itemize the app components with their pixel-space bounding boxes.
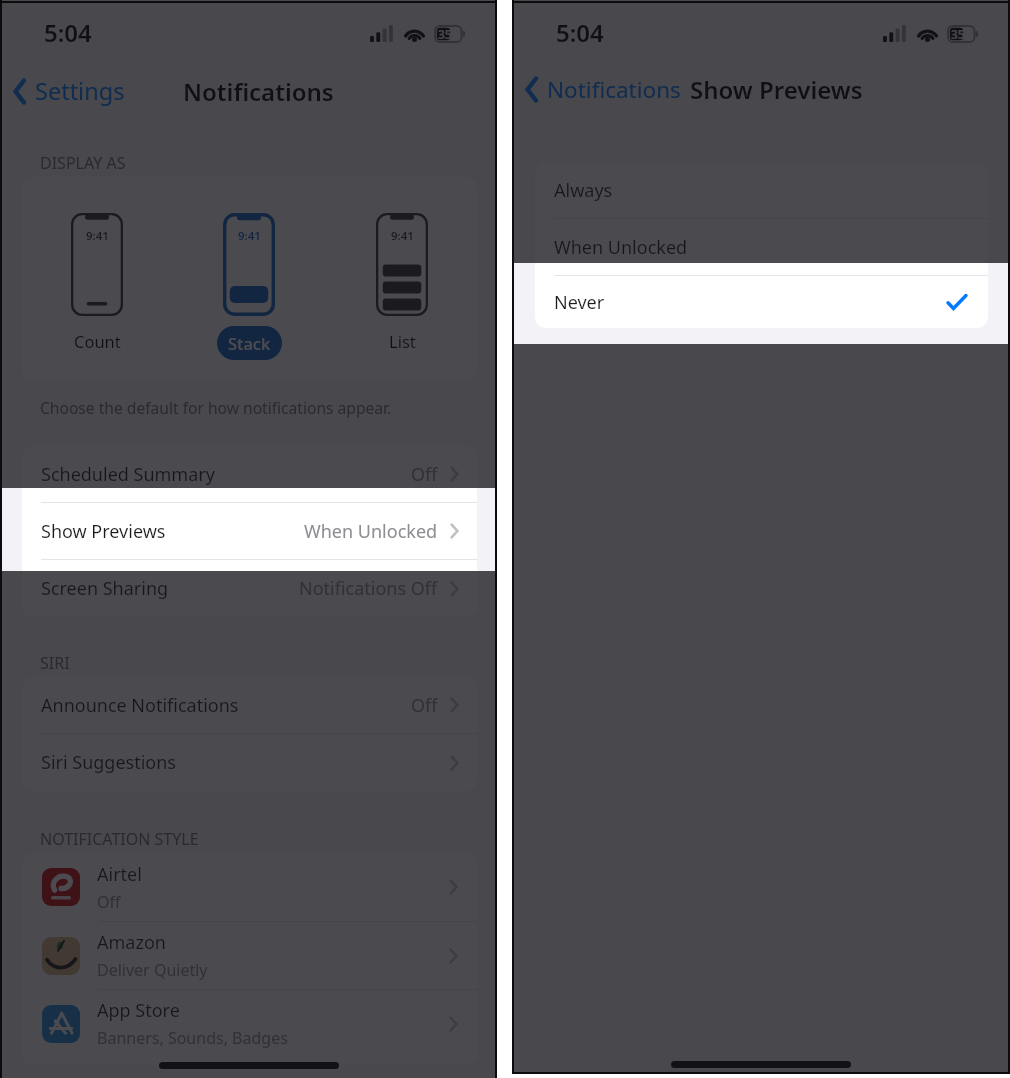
button[interactable]: Always [535,162,988,219]
staticText: NOTIFICATION STYLE [40,828,199,850]
staticText: When Unlocked [304,519,438,544]
button[interactable]: Notifications [512,70,687,109]
staticText: Banners, Sounds, Badges [97,1027,288,1049]
staticText: Always [554,178,613,203]
staticText: App Store [97,998,180,1023]
staticText: Siri Suggestions [41,750,176,775]
staticText: Off [411,462,438,487]
staticText: Stack [228,332,271,354]
staticText: Announce Notifications [41,693,239,718]
button[interactable]: Airtel [22,853,477,922]
button[interactable]: Never [535,276,988,328]
staticText: 35 [951,26,965,42]
staticText: Airtel [97,862,142,887]
staticText: Notifications [547,74,681,105]
staticText: Count [74,330,121,352]
staticText: 9:41 [391,228,414,244]
button[interactable]: Show Previews [22,503,477,560]
staticText: Off [411,693,438,718]
staticText: Show Previews [41,519,166,544]
staticText: 9:41 [238,228,261,244]
staticText: 35 [438,26,452,42]
button[interactable]: Announce Notifications [22,677,477,734]
staticText: Off [97,891,121,913]
staticText: Show Previews [690,73,863,106]
staticText: Never [554,290,605,315]
staticText: SIRI [40,652,70,674]
button[interactable]: Screen Sharing [22,560,477,617]
button[interactable]: When Unlocked [535,219,988,276]
staticText: Notifications Off [299,576,438,601]
staticText: DISPLAY AS [40,152,126,174]
staticText: Amazon [97,930,166,955]
button[interactable]: Settings [0,71,131,111]
staticText: 5:04 [556,16,604,49]
button[interactable]: Siri Suggestions [22,734,477,791]
button[interactable]: 9:41 [342,213,462,357]
button[interactable]: 9:41 [37,213,157,357]
staticText: Settings [35,75,125,107]
other: Selected [946,293,968,311]
button[interactable]: App Store [22,990,477,1057]
staticText: 5:04 [44,16,92,49]
staticText: Choose the default for how notifications… [40,397,392,418]
button[interactable]: Amazon [22,922,477,990]
button[interactable]: Scheduled Summary [22,446,477,503]
staticText: Notifications [183,75,334,108]
staticText: 9:41 [86,228,109,244]
button[interactable]: 9:41 [189,213,309,359]
staticText: Screen Sharing [41,576,169,601]
staticText: List [389,330,416,352]
staticText: When Unlocked [554,235,688,260]
staticText: Deliver Quietly [97,959,208,981]
staticText: Scheduled Summary [41,462,215,487]
